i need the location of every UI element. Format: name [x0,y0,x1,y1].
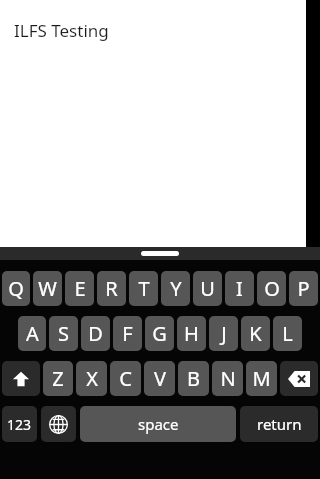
staticText: N [220,365,236,392]
button[interactable]: B [178,361,209,396]
button[interactable]: I [225,271,254,306]
button[interactable]: J [209,316,238,351]
staticText: R [105,275,118,302]
button[interactable]: L [273,316,302,351]
button[interactable]: U [193,271,222,306]
button[interactable]: G [145,316,174,351]
staticText: P [297,275,310,302]
staticText: Y [170,275,182,302]
staticText: D [88,320,103,347]
staticText: W [38,275,57,302]
staticText: 123 [7,415,32,434]
button[interactable]: K [241,316,270,351]
staticText: E [74,275,86,302]
button[interactable]: Shift [2,361,40,396]
button[interactable]: Change keyboard language [41,406,76,442]
button[interactable]: H [177,316,206,351]
staticText: return [257,414,302,434]
staticText: Q [8,275,24,302]
button[interactable]: F [113,316,142,351]
button[interactable]: C [110,361,141,396]
button[interactable]: 123 [2,406,37,442]
staticText: H [184,320,199,347]
staticText: T [138,275,150,302]
staticText: ILFS Testing [14,19,109,42]
staticText: B [187,365,200,392]
button[interactable]: N [212,361,243,396]
staticText: J [221,320,227,347]
staticText: X [86,365,98,392]
staticText: C [119,365,132,392]
button[interactable]: W [33,271,62,306]
button[interactable]: P [289,271,318,306]
staticText: L [282,320,293,347]
button[interactable]: M [246,361,277,396]
button[interactable]: V [144,361,175,396]
button[interactable]: return [240,406,318,442]
button[interactable]: Drag handle [141,251,179,256]
button[interactable]: E [65,271,94,306]
staticText: G [152,320,167,347]
button[interactable]: Q [2,271,30,306]
staticText: I [236,275,243,302]
button[interactable]: Z [43,361,73,396]
staticText: Z [52,365,64,392]
staticText: U [200,275,215,302]
button[interactable]: S [49,316,78,351]
button[interactable]: X [76,361,107,396]
button[interactable]: O [257,271,286,306]
staticText: F [122,320,133,347]
button[interactable]: Y [161,271,190,306]
staticText: S [58,320,69,347]
button[interactable]: Backspace [280,361,318,396]
staticText: M [252,365,271,392]
button[interactable]: space [80,406,236,442]
button[interactable]: A [18,316,46,351]
button[interactable]: R [97,271,126,306]
staticText: O [264,275,280,302]
staticText: K [249,320,262,347]
staticText: A [26,320,39,347]
staticText: space [138,414,179,434]
button[interactable]: D [81,316,110,351]
staticText: V [154,365,166,392]
button[interactable]: T [129,271,158,306]
